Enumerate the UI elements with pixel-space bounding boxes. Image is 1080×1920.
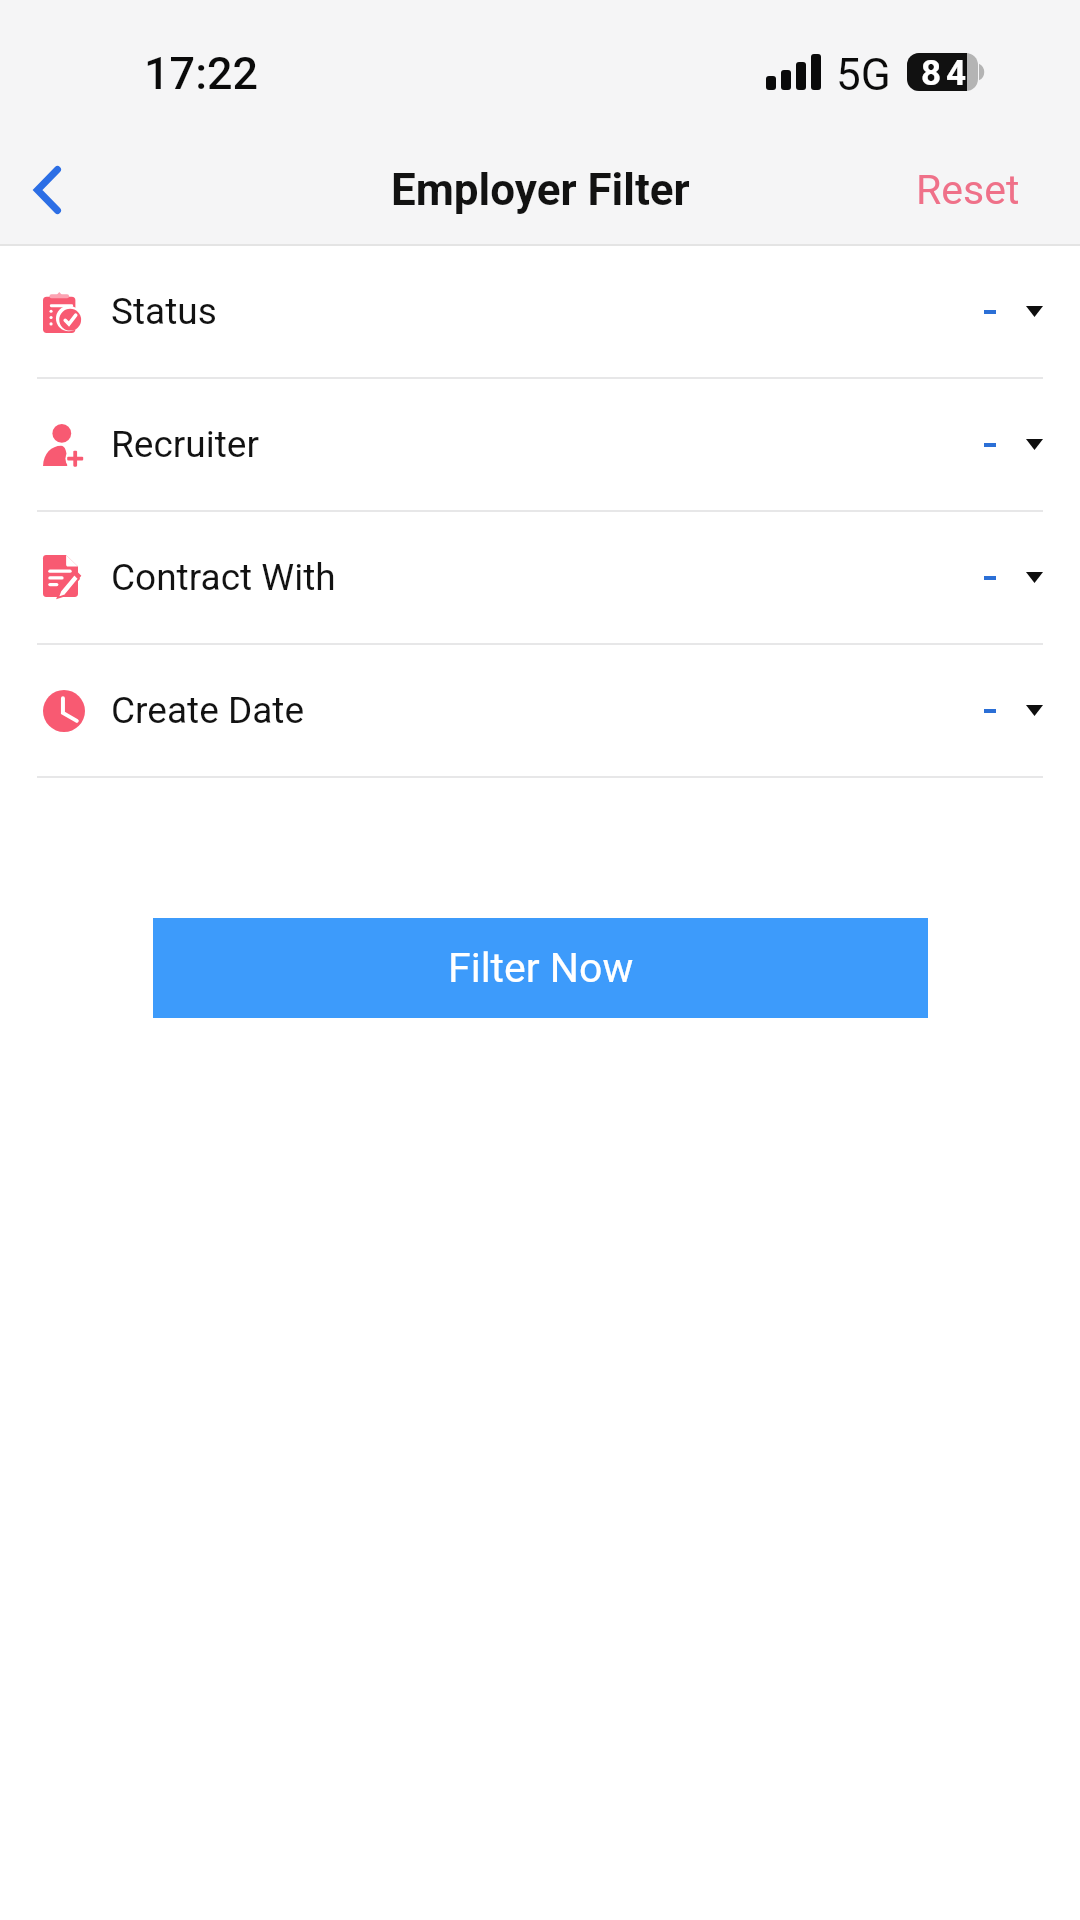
staticText: Contract With (111, 556, 336, 599)
staticText: Employer Filter (391, 164, 690, 216)
button[interactable]: Create Date (0, 645, 1080, 776)
button[interactable]: Choose Status (984, 246, 1043, 377)
staticText: Status (111, 290, 217, 333)
button[interactable]: Back (0, 144, 95, 236)
staticText: 17:22 (144, 47, 259, 100)
button[interactable]: Choose Contract With (984, 512, 1043, 643)
staticText: Create Date (111, 689, 305, 732)
button[interactable]: Contract With (0, 512, 1080, 643)
button[interactable]: Reset (896, 140, 1040, 240)
staticText: Reset (916, 166, 1020, 214)
staticText: Filter Now (448, 944, 634, 992)
button[interactable]: Filter Now (153, 918, 928, 1018)
staticText: 5G (836, 49, 891, 101)
staticText: 84 (921, 53, 972, 94)
button[interactable]: Choose Create Date (984, 645, 1043, 776)
button[interactable]: Status (0, 246, 1080, 377)
button[interactable]: Choose Recruiter (984, 379, 1043, 510)
button[interactable]: Recruiter (0, 379, 1080, 510)
staticText: Recruiter (111, 423, 259, 466)
